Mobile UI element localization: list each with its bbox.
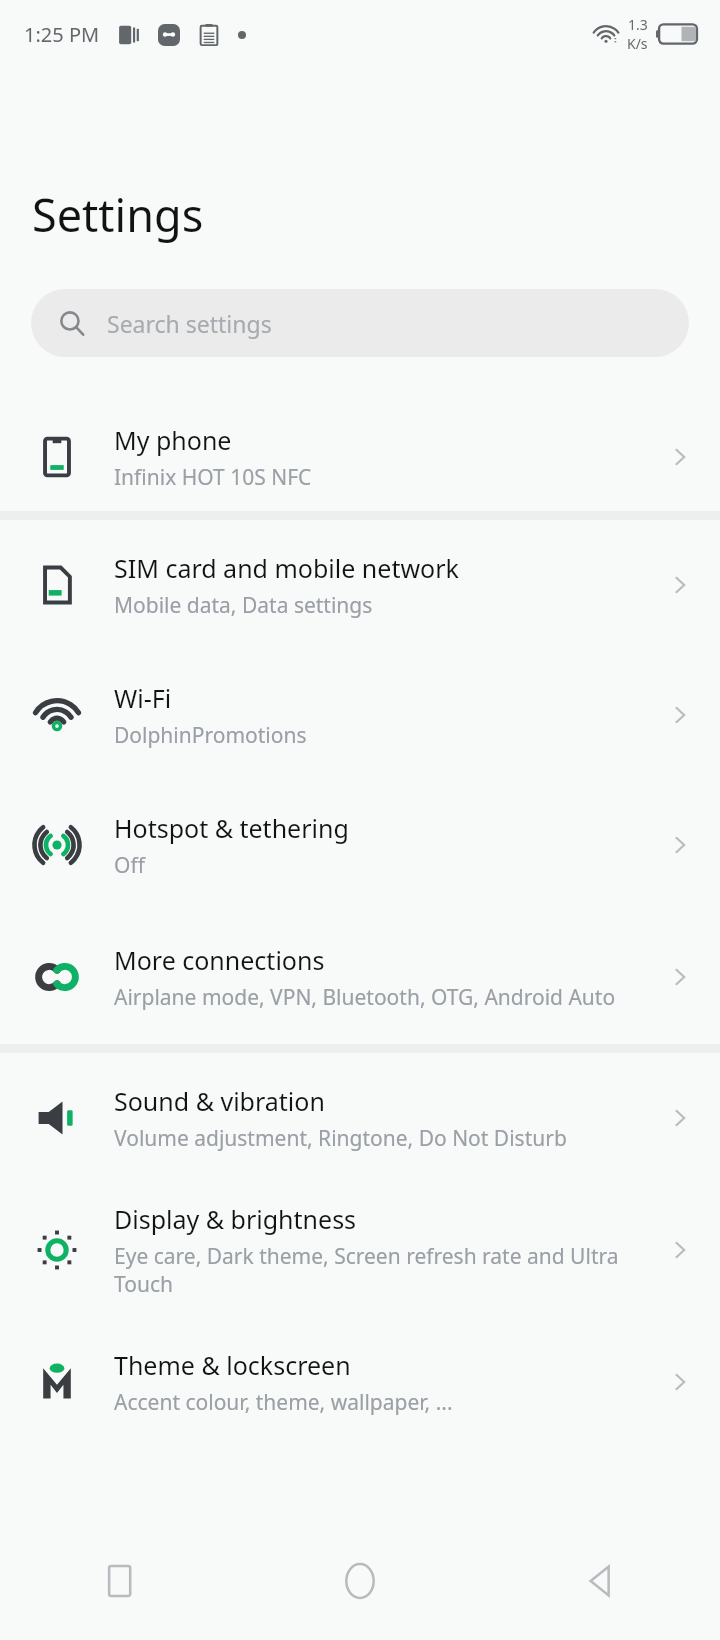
- staticText: Hotspot & tethering: [114, 811, 349, 845]
- staticText: Accent colour, theme, wallpaper, ...: [114, 1388, 453, 1417]
- staticText: Sound & vibration: [114, 1084, 325, 1118]
- button[interactable]: Home: [240, 1522, 480, 1640]
- staticText: More connections: [114, 943, 325, 977]
- other: SIM card and mobile network: [34, 562, 80, 608]
- button[interactable]: Sound and vibration: [0, 1053, 720, 1183]
- button[interactable]: More connections: [0, 910, 720, 1044]
- button[interactable]: SIM card and mobile network: [0, 520, 720, 650]
- staticText: My phone: [114, 423, 232, 457]
- staticText: DolphinPromotions: [114, 721, 307, 750]
- button[interactable]: Search settings: [31, 289, 689, 357]
- button[interactable]: Wi-Fi: [0, 650, 720, 780]
- other: More connections: [34, 954, 80, 1000]
- staticText: Infinix HOT 10S NFC: [114, 463, 312, 492]
- other: Display and brightness: [34, 1227, 80, 1273]
- other: Sound and vibration: [34, 1095, 80, 1141]
- staticText: Volume adjustment, Ringtone, Do Not Dist…: [114, 1124, 567, 1153]
- button[interactable]: Back: [480, 1522, 720, 1640]
- staticText: SIM card and mobile network: [114, 551, 459, 585]
- staticText: Theme & lockscreen: [114, 1348, 351, 1382]
- staticText: 1.3: [628, 15, 648, 34]
- button[interactable]: Recents: [0, 1522, 240, 1640]
- button[interactable]: Display and brightness: [0, 1183, 720, 1317]
- staticText: Mobile data, Data settings: [114, 591, 373, 620]
- staticText: Off: [114, 851, 145, 880]
- staticText: 1:25 PM: [24, 21, 100, 48]
- button[interactable]: Theme and lockscreen: [0, 1317, 720, 1447]
- button[interactable]: My phone: [0, 403, 720, 511]
- button[interactable]: Hotspot and tethering: [0, 780, 720, 910]
- staticText: Settings: [32, 184, 204, 245]
- staticText: Wi-Fi: [114, 681, 172, 715]
- staticText: Display & brightness: [114, 1202, 357, 1236]
- other: Theme and lockscreen: [34, 1359, 80, 1405]
- staticText: Airplane mode, VPN, Bluetooth, OTG, Andr…: [114, 983, 616, 1012]
- other: Wi-Fi: [34, 692, 80, 738]
- other: My phone: [34, 434, 80, 480]
- staticText: K/s: [627, 34, 648, 53]
- other: Hotspot and tethering: [34, 822, 80, 868]
- staticText: Search settings: [107, 308, 272, 339]
- staticText: Eye care, Dark theme, Screen refresh rat…: [114, 1242, 620, 1298]
